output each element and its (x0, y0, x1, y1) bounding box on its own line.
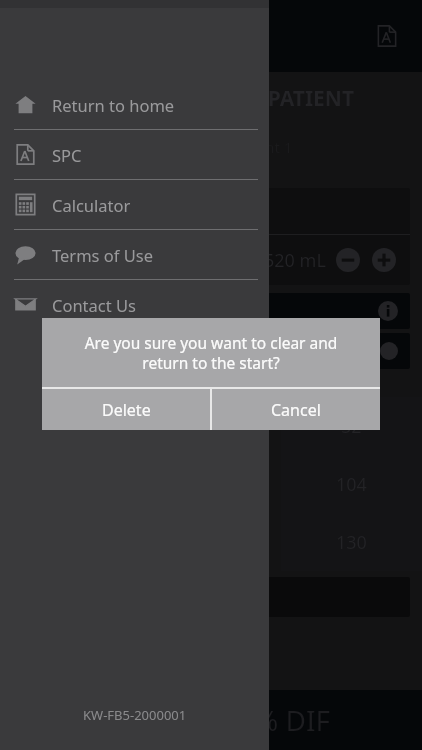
button[interactable]: Return to home (0, 80, 269, 129)
staticText: 520 mL (264, 248, 326, 273)
staticText: Calculator (52, 194, 131, 216)
staticText: SPC (52, 144, 82, 166)
button[interactable]: Delete (42, 389, 210, 430)
staticText: RATE (24, 342, 54, 360)
button[interactable]: RATE (24, 333, 398, 369)
staticText: % DIF (255, 701, 331, 739)
button[interactable]: ADD PATIENT (184, 80, 359, 117)
staticText: 130 (336, 530, 367, 555)
button[interactable]: Calculator (0, 180, 269, 229)
staticText: Delete (102, 399, 151, 421)
button[interactable]: SPC PDF (370, 19, 404, 53)
button[interactable]: Contact Us (0, 280, 269, 329)
staticText: 100 (195, 414, 226, 439)
button[interactable]: Decrease (336, 248, 360, 272)
button[interactable]: Terms of Use (0, 230, 269, 279)
staticText: 104 (336, 472, 367, 497)
staticText: KW-FB5-2000001 (83, 706, 187, 724)
button[interactable]: SPC (0, 130, 269, 179)
staticText: Volume (26, 250, 80, 270)
staticText: Are you sure you want to clear and retur… (60, 332, 362, 373)
button[interactable]: Increase (372, 248, 396, 272)
staticText: Terms of Use (52, 244, 153, 266)
staticText: DOSE (24, 302, 59, 320)
staticText: Return to home (52, 94, 175, 116)
button[interactable]: Cancel (212, 389, 380, 430)
staticText: ADD PATIENT (217, 84, 355, 113)
staticText: 52 (341, 414, 362, 439)
staticText: Patient 1 (230, 137, 293, 157)
staticText: Cancel (271, 399, 321, 421)
staticText: Contact Us (52, 294, 136, 316)
button[interactable]: DOSE (24, 293, 398, 329)
button[interactable]: Info (378, 301, 398, 321)
